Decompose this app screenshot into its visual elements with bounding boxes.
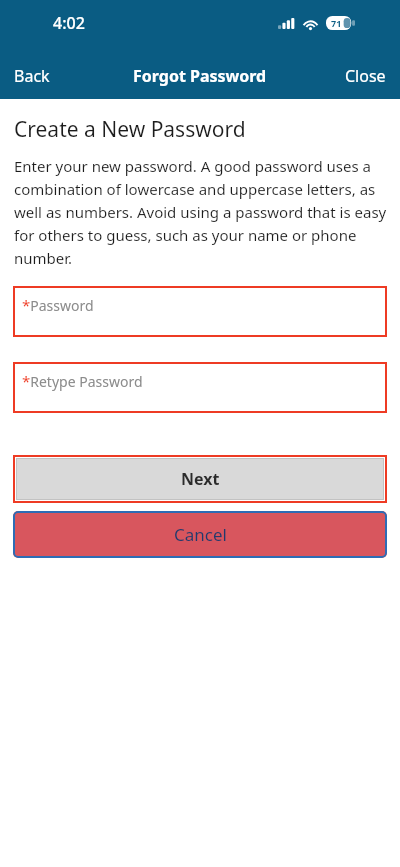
staticText: Enter your new password. A good password… — [14, 156, 387, 268]
button[interactable]: Close — [331, 52, 400, 99]
button[interactable]: *Password — [13, 286, 387, 337]
staticText: Cancel — [174, 523, 227, 546]
staticText: Next — [181, 468, 220, 490]
button[interactable]: Cancel — [13, 511, 387, 558]
staticText: 4:02 — [53, 12, 85, 34]
staticText: Forgot Password — [133, 65, 267, 87]
staticText: Create a New Password — [14, 115, 246, 144]
button[interactable]: *Retype Password — [13, 362, 387, 413]
staticText: 71 — [331, 17, 342, 29]
staticText: Back — [14, 65, 50, 87]
staticText: *Retype Password — [22, 371, 143, 391]
staticText: Close — [345, 65, 386, 87]
button[interactable]: Next — [16, 458, 384, 500]
staticText: *Password — [22, 295, 94, 315]
button[interactable]: Back — [0, 52, 64, 99]
